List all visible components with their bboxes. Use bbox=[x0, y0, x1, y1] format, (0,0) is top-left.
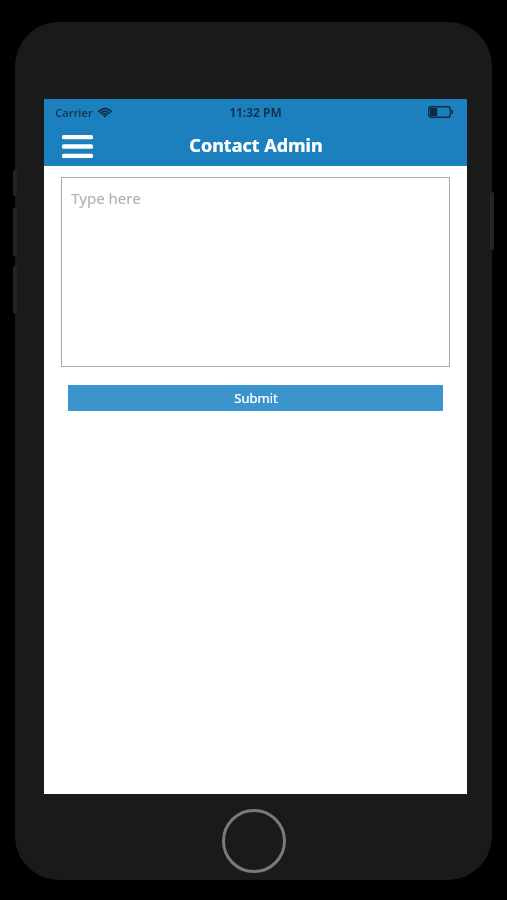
staticText: Carrier bbox=[55, 105, 93, 120]
button[interactable]: Type here bbox=[61, 177, 450, 367]
other: Home bbox=[222, 809, 286, 873]
staticText: 11:32 PM bbox=[229, 104, 282, 120]
staticText: Submit bbox=[234, 389, 278, 407]
staticText: Type here bbox=[71, 188, 141, 208]
staticText: Contact Admin bbox=[189, 133, 323, 158]
button[interactable]: Menu bbox=[56, 128, 98, 164]
button[interactable]: Submit bbox=[68, 385, 443, 411]
